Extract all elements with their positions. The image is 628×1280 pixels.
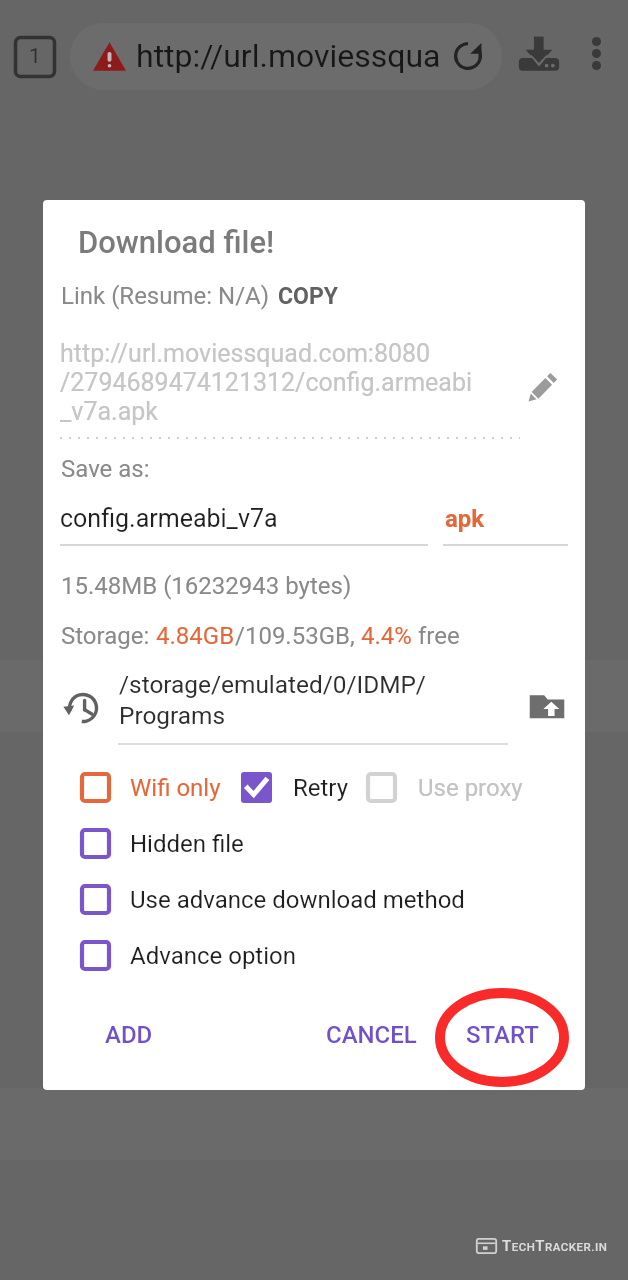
button[interactable]: Advance option [73, 933, 303, 978]
staticText: Link (Resume: N/A) [61, 282, 270, 310]
staticText: Storage: [61, 622, 156, 650]
button[interactable]: Tabs [14, 36, 56, 78]
staticText: apk [445, 505, 485, 533]
staticText: TECHTRACKER.IN [502, 1237, 608, 1255]
button[interactable]: Use advance download method [73, 877, 472, 922]
staticText: 15.48MB (16232943 bytes) [61, 572, 352, 600]
button[interactable]: Hidden file [73, 821, 251, 866]
button[interactable]: http://url.moviessqua [70, 23, 502, 90]
staticText: Use proxy [418, 774, 523, 802]
other: Reload [454, 42, 482, 70]
staticText: CANCEL [326, 1021, 417, 1049]
button[interactable]: Wifi only [73, 765, 228, 810]
button[interactable]: Recent folders [59, 684, 107, 732]
staticText: Advance option [130, 942, 296, 970]
staticText: Hidden file [130, 830, 244, 858]
staticText: http://url.moviessquad.com:8080 /2794689… [60, 339, 473, 426]
button[interactable]: Choose folder [523, 682, 571, 730]
staticText: Download file! [78, 224, 275, 260]
button[interactable]: Use proxy [359, 765, 530, 810]
staticText: 1 [29, 44, 41, 69]
staticText: /109.53GB, [235, 622, 361, 650]
staticText: Save as: [61, 455, 150, 483]
staticText: START [466, 1021, 539, 1049]
staticText: Retry [293, 774, 349, 802]
staticText: free [412, 622, 460, 650]
button[interactable]: Retry [234, 765, 356, 810]
button[interactable]: Edit link [521, 367, 563, 409]
button[interactable]: START [450, 1007, 555, 1063]
staticText: Wifi only [130, 774, 221, 802]
button[interactable]: More options [573, 30, 619, 76]
staticText: Use advance download method [130, 886, 465, 914]
staticText: 4.4% [361, 622, 412, 650]
button[interactable]: /storage/emulated/0/IDMP/ Programs [119, 670, 426, 729]
button[interactable]: ADD [89, 1007, 169, 1063]
staticText: http://url.moviessqua [136, 37, 441, 75]
staticText: ADD [105, 1021, 153, 1049]
button[interactable]: COPY [278, 283, 338, 310]
staticText: COPY [278, 283, 338, 310]
staticText: config.armeabi_v7a [60, 504, 278, 533]
button[interactable]: CANCEL [310, 1007, 433, 1063]
button[interactable]: Downloads [513, 27, 565, 79]
staticText: 4.84GB [156, 622, 235, 650]
